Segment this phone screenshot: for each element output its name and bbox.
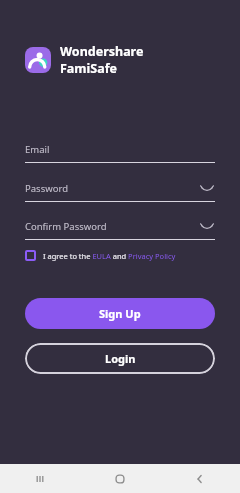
staticText: Sign Up bbox=[99, 306, 141, 321]
button[interactable]: I agree to the EULA and Privacy Policy bbox=[25, 250, 176, 261]
button[interactable]: Toggle password visibility bbox=[199, 219, 215, 235]
staticText: Email bbox=[25, 143, 50, 156]
staticText: Password bbox=[25, 182, 68, 195]
button[interactable]: Sign Up bbox=[25, 298, 215, 329]
staticText: I agree to the EULA and Privacy Policy bbox=[43, 251, 176, 261]
staticText: Login bbox=[105, 351, 136, 366]
staticText: Confirm Password bbox=[25, 220, 107, 233]
other: FamiSafe logo bbox=[25, 47, 51, 73]
button[interactable]: Toggle password visibility bbox=[199, 181, 215, 197]
button[interactable]: Recent apps bbox=[0, 464, 80, 493]
button[interactable]: Home bbox=[80, 464, 160, 493]
button[interactable]: Login bbox=[25, 343, 215, 374]
button[interactable]: Back bbox=[160, 464, 240, 493]
staticText: Wondershare bbox=[60, 43, 144, 60]
staticText: FamiSafe bbox=[60, 60, 117, 77]
